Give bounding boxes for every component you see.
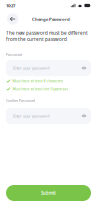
- button[interactable]: Back: [7, 13, 18, 25]
- button[interactable]: Enter your password: [6, 108, 91, 124]
- staticText: Enter your password: [13, 113, 49, 119]
- staticText: Password: [6, 52, 22, 57]
- staticText: Confirm Password: [6, 98, 35, 103]
- staticText: Must have at least 8 characters: [12, 79, 63, 83]
- staticText: Must have at least one Uppercase: [12, 86, 68, 91]
- staticText: Change Password: [32, 16, 70, 22]
- staticText: Enter your password: [13, 65, 49, 71]
- staticText: The new password must be different from …: [6, 30, 88, 42]
- staticText: Submit: [41, 190, 56, 196]
- button[interactable]: Submit: [6, 185, 91, 201]
- button[interactable]: Enter your password: [6, 60, 91, 76]
- staticText: 10:27: [6, 3, 15, 8]
